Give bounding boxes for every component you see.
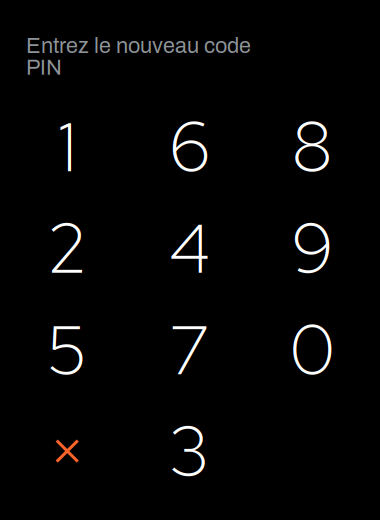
button[interactable]: 1: [6, 96, 128, 197]
staticText: 9: [291, 202, 333, 294]
button[interactable]: 6: [128, 96, 251, 197]
button[interactable]: 7: [128, 299, 251, 400]
button[interactable]: 9: [251, 197, 373, 299]
button[interactable]: 8: [251, 96, 373, 197]
staticText: 2: [46, 202, 88, 294]
staticText: 0: [290, 304, 335, 395]
staticText: 4: [169, 202, 210, 294]
staticText: 5: [46, 304, 88, 395]
staticText: 8: [291, 101, 333, 192]
staticText: Entrez le nouveau code PIN: [26, 34, 251, 79]
button[interactable]: 0: [251, 299, 373, 400]
button[interactable]: 5: [6, 299, 128, 400]
button[interactable]: Delete: [6, 400, 128, 502]
button[interactable]: 2: [6, 197, 128, 299]
staticText: 6: [169, 101, 211, 192]
staticText: 1: [58, 101, 76, 192]
staticText: 7: [169, 304, 211, 395]
button[interactable]: 3: [128, 400, 251, 502]
staticText: 3: [169, 405, 211, 497]
button[interactable]: 4: [128, 197, 251, 299]
